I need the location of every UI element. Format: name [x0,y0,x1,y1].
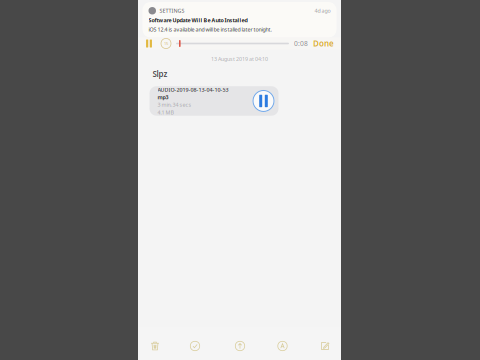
button[interactable] [232,338,248,354]
staticText: 4d ago [314,7,330,14]
staticText: iOS 12.4 is available and will be instal… [148,26,271,33]
staticText: 15 [164,41,168,46]
button[interactable] [187,338,203,354]
staticText: mp3 [157,94,168,101]
button[interactable] [274,338,290,354]
button[interactable]: SETTINGS [142,2,336,37]
staticText: SETTINGS [159,7,184,14]
button[interactable]: Skip back 15 seconds [156,37,176,49]
staticText: 3 min, 34 secs [157,101,191,108]
button[interactable]: AUDIO-2019-08-13-04-10-53 [149,86,278,116]
staticText: Done [313,38,334,49]
button[interactable] [147,338,163,354]
staticText: Slpz [152,69,167,79]
staticText: 13 August 2019 at 04:10 [211,55,268,63]
staticText: 4.1 MB [157,109,173,116]
button[interactable] [317,338,333,354]
staticText: Software Update Will Be Auto Installed [148,17,247,24]
staticText: AUDIO-2019-08-13-04-10-53 [157,86,228,93]
staticText: 0:08 [294,39,308,48]
button[interactable]: Done [308,37,339,49]
button[interactable]: Pause [142,37,156,49]
